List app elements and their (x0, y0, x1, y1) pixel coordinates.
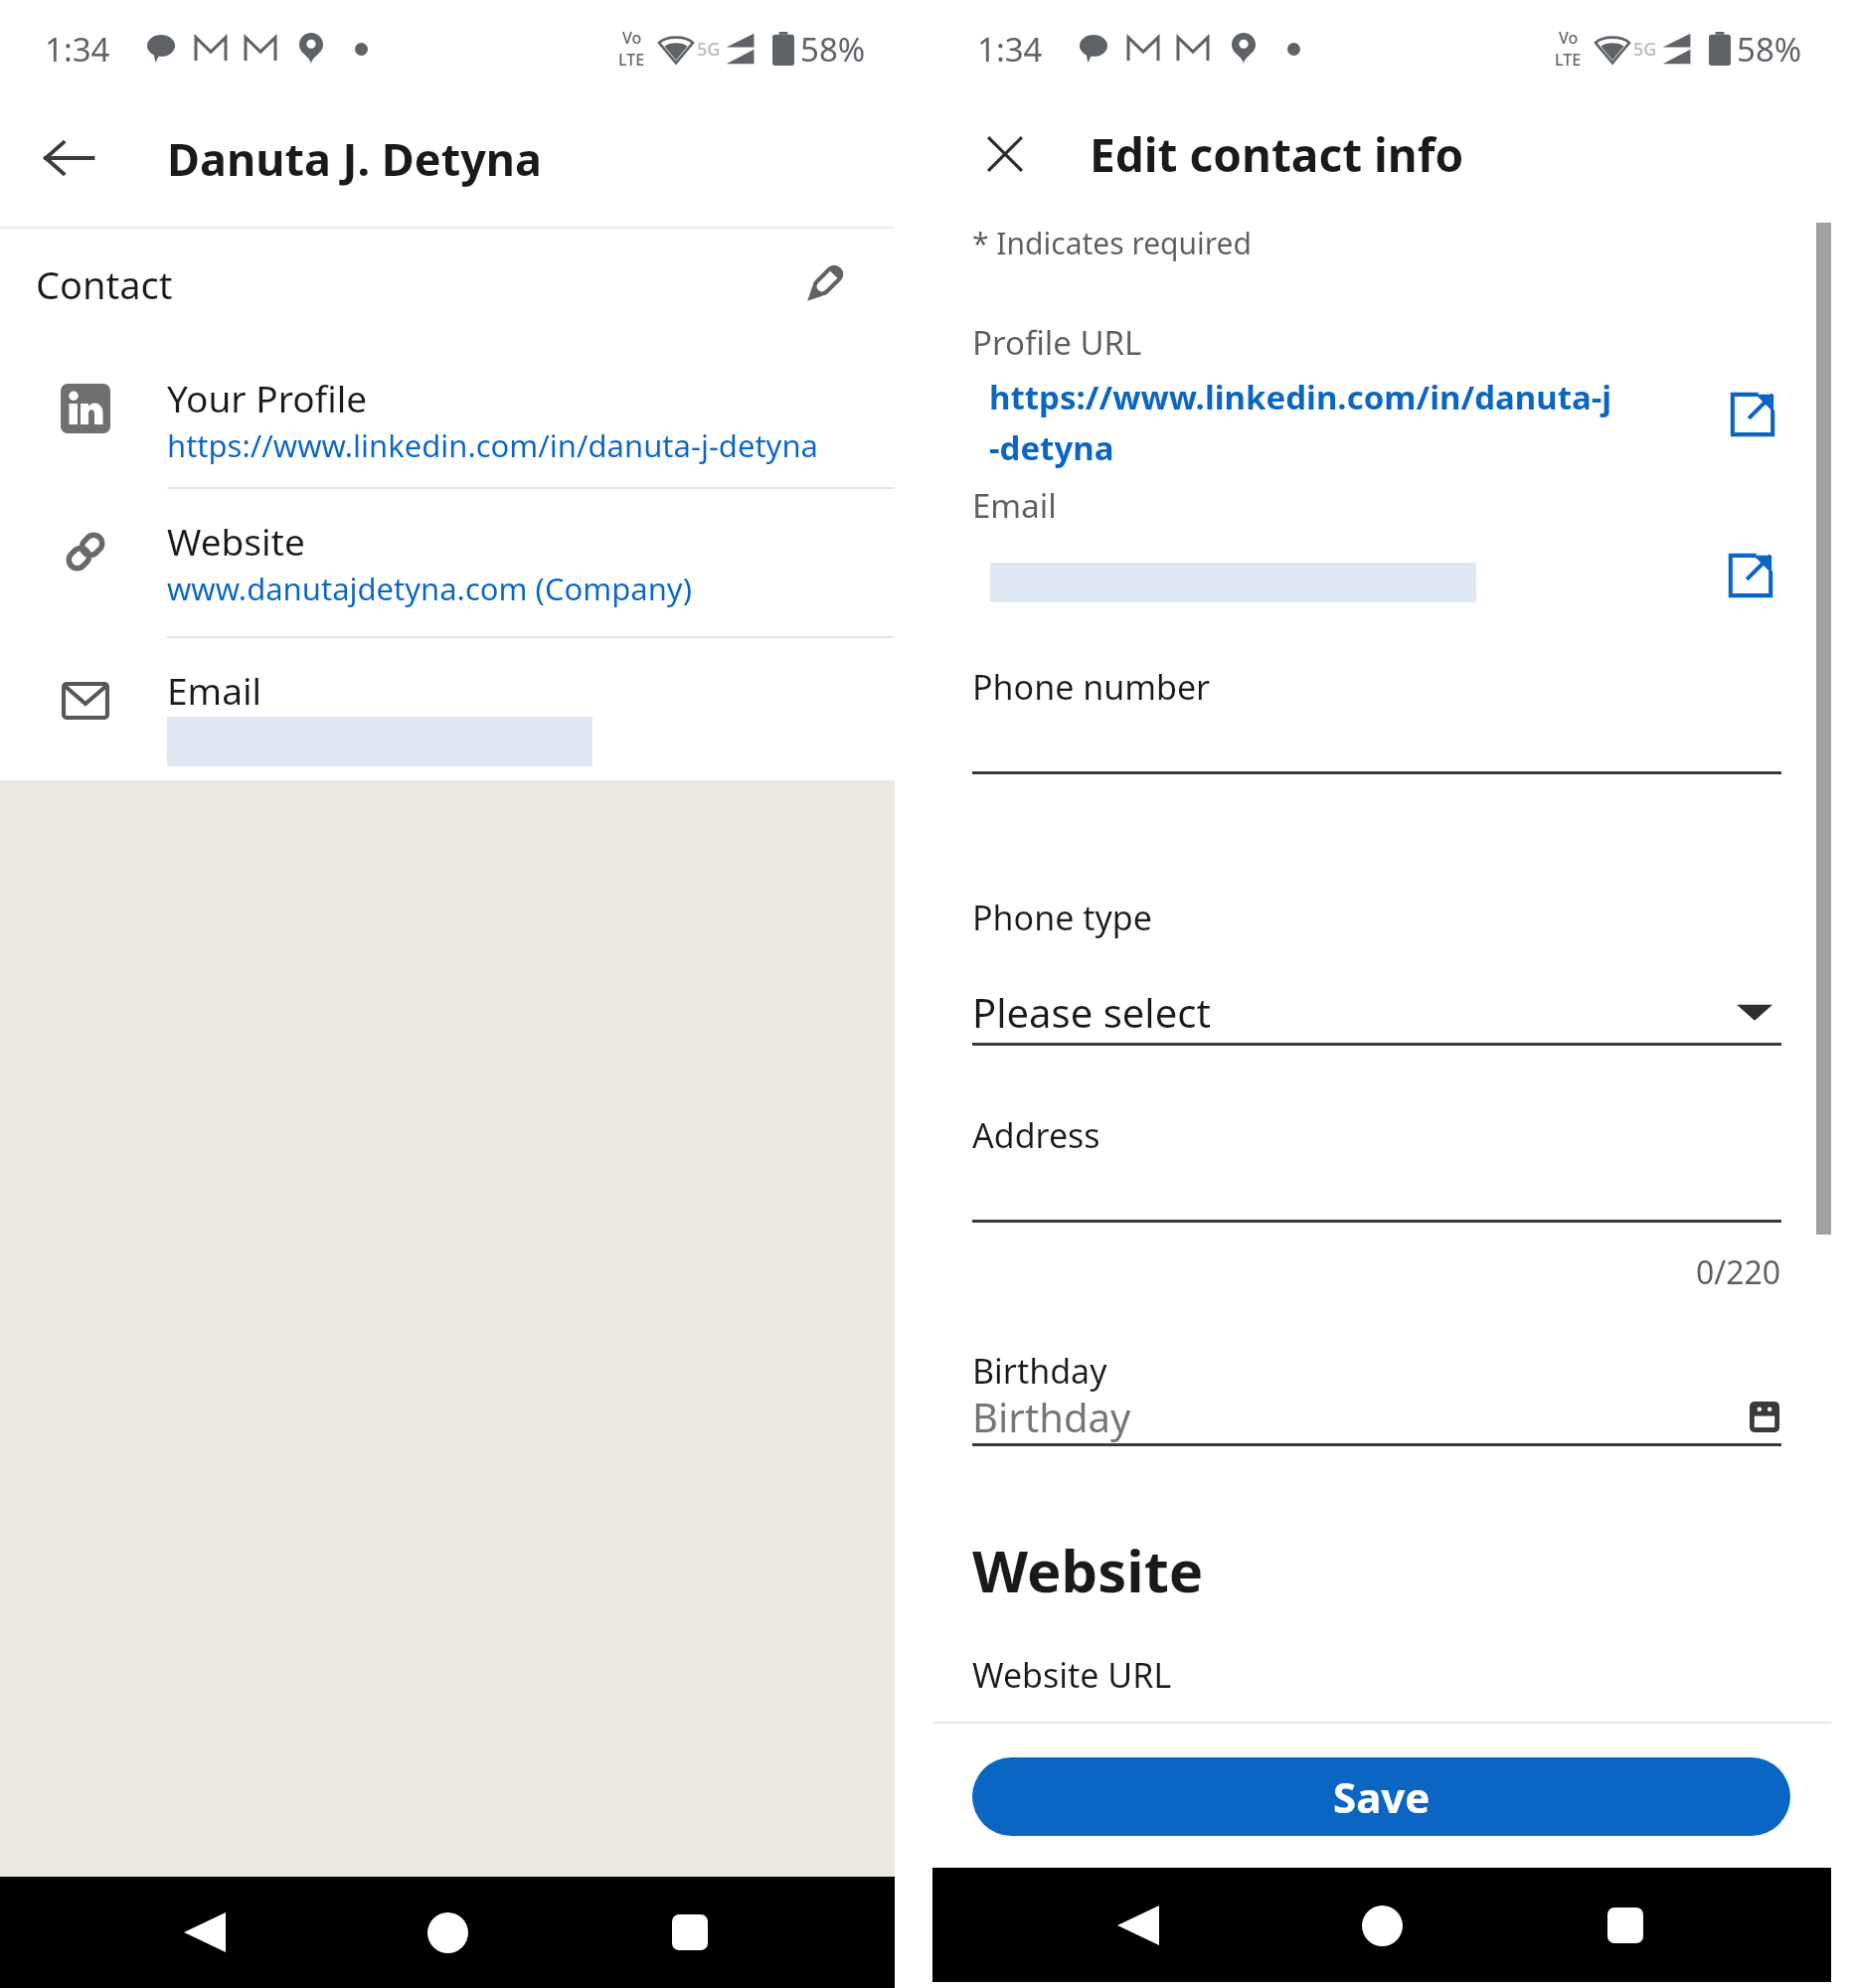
staticText: 1:34 (45, 27, 110, 72)
staticText: Email (167, 665, 262, 715)
staticText: 5G (697, 37, 721, 62)
button[interactable]: Your Profile (0, 340, 895, 466)
staticText: Your Profile (167, 373, 368, 422)
staticText: Danuta J. Detyna (167, 128, 543, 189)
button[interactable]: Recents (652, 1895, 728, 1970)
button[interactable]: Open profile URL (1720, 382, 1785, 447)
staticText: LTE (618, 49, 645, 71)
staticText: 58% (1737, 27, 1802, 72)
staticText: Vo (1559, 27, 1579, 49)
button[interactable]: Edit (789, 249, 859, 319)
staticText: Vo (622, 27, 642, 49)
staticText: Birthday (972, 1348, 1107, 1394)
button[interactable]: Recents (1588, 1888, 1663, 1963)
button[interactable]: Email (0, 638, 895, 766)
button[interactable]: Save (972, 1757, 1790, 1836)
staticText: Website (972, 1531, 1204, 1609)
staticText: Profile URL (972, 320, 1142, 365)
button[interactable]: Please select (972, 978, 1772, 1046)
staticText: Edit contact info (1090, 123, 1464, 186)
staticText: Save (1333, 1768, 1431, 1825)
staticText: https://www.linkedin.com/in/danuta-j -de… (989, 375, 1612, 470)
button[interactable]: Back (40, 129, 97, 187)
staticText: 58% (800, 27, 866, 72)
staticText: Website URL (972, 1652, 1172, 1698)
button[interactable]: Back (167, 1895, 243, 1970)
staticText: 5G (1633, 37, 1657, 62)
staticText: Address (972, 1112, 1100, 1158)
button[interactable]: Home (410, 1895, 485, 1970)
staticText: Website (167, 516, 305, 566)
staticText: 1:34 (977, 27, 1043, 72)
button[interactable]: Birthday (972, 1390, 1779, 1443)
staticText: LTE (1555, 49, 1582, 71)
staticText: Phone type (972, 895, 1152, 940)
staticText: 0/220 (1696, 1250, 1781, 1294)
staticText: www.danutajdetyna.com (Company) (167, 568, 692, 609)
button[interactable]: Back (1100, 1888, 1176, 1963)
staticText: * Indicates required (972, 223, 1252, 263)
staticText: https://www.linkedin.com/in/danuta-j-det… (167, 424, 818, 466)
button[interactable]: Close (967, 116, 1043, 192)
button[interactable]: Website (0, 489, 895, 609)
staticText: Birthday (972, 1390, 1131, 1443)
button[interactable]: Open email (1718, 543, 1783, 608)
button[interactable]: Home (1344, 1888, 1420, 1963)
staticText: Email (972, 483, 1057, 528)
staticText: Please select (972, 985, 1211, 1039)
staticText: Contact (36, 258, 173, 310)
staticText: Phone number (972, 664, 1211, 710)
